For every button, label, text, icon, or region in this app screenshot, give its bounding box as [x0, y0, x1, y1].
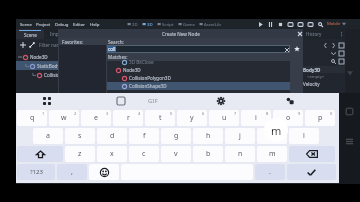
button[interactable]: movie — [295, 19, 305, 29]
button[interactable]: Renderer menu — [341, 21, 347, 27]
button[interactable]: sticker — [283, 94, 297, 108]
button[interactable]: 2D — [125, 19, 140, 29]
button[interactable]: p — [305, 110, 335, 126]
button[interactable]: , — [57, 164, 87, 180]
staticText: j — [239, 131, 241, 141]
button[interactable]: Add node — [18, 40, 27, 49]
staticText: Project — [36, 21, 51, 27]
button[interactable]: s — [65, 128, 95, 144]
button[interactable]: h — [193, 128, 223, 144]
button[interactable]: i — [241, 110, 271, 126]
button[interactable]: CollisionSha — [16, 70, 108, 79]
button[interactable]: g — [161, 128, 191, 144]
button[interactable]: z — [65, 146, 95, 162]
button[interactable]: t — [145, 110, 175, 126]
button[interactable]: n — [225, 146, 255, 162]
button[interactable]: 3D BitClose — [107, 58, 290, 66]
button[interactable]: search — [315, 19, 325, 29]
button[interactable]: Help — [88, 19, 102, 29]
staticText: Node3D — [123, 67, 141, 73]
staticText: p — [318, 113, 323, 123]
button[interactable]: Instance child scene — [27, 40, 36, 49]
button[interactable]: stop — [275, 19, 285, 29]
button[interactable]: Hide keyboard — [344, 136, 355, 147]
button[interactable]: w — [49, 110, 79, 126]
button[interactable]: grid — [40, 94, 54, 108]
button[interactable]: c — [129, 146, 159, 162]
button[interactable]: Clear — [283, 46, 290, 53]
button[interactable]: 3D — [140, 19, 155, 29]
button[interactable]: Close — [296, 30, 303, 37]
button[interactable]: k — [257, 128, 287, 144]
staticText: coll — [108, 46, 116, 52]
button[interactable]: Debug — [53, 19, 71, 29]
button[interactable]: pause — [265, 19, 275, 29]
button[interactable]: o — [273, 110, 303, 126]
staticText: o — [286, 113, 291, 123]
button[interactable]: Game — [176, 19, 197, 29]
button[interactable]: l — [289, 128, 319, 144]
staticText: w — [61, 113, 67, 123]
button[interactable]: d — [97, 128, 127, 144]
staticText: l — [303, 131, 305, 141]
button[interactable] — [17, 146, 63, 162]
button[interactable]: obj — [337, 41, 345, 49]
button[interactable]: Favorite — [292, 44, 302, 54]
button[interactable]: q — [329, 57, 337, 65]
button[interactable]: reload — [285, 19, 295, 29]
button[interactable]: r — [113, 110, 143, 126]
button[interactable]: Mobile — [325, 21, 341, 27]
button[interactable]: CollisionShape3D — [107, 82, 290, 90]
button[interactable]: Script — [155, 19, 176, 29]
button[interactable]: Project — [34, 19, 53, 29]
button[interactable]: movie — [305, 19, 315, 29]
button[interactable]: v — [329, 49, 337, 57]
button[interactable]: ?123 — [17, 164, 55, 180]
button[interactable]: obj — [337, 57, 345, 65]
button[interactable]: y — [177, 110, 207, 126]
staticText: Favorites: — [62, 39, 83, 45]
button[interactable]: obj — [337, 49, 345, 57]
staticText: Velocity — [303, 81, 320, 87]
button[interactable]: > — [329, 41, 337, 49]
button[interactable]: f — [129, 128, 159, 144]
button[interactable]: StaticBody3D — [16, 61, 108, 70]
button[interactable]: AssetLib — [197, 19, 223, 29]
button[interactable]: m — [257, 146, 287, 162]
button[interactable]: GIF — [148, 97, 158, 105]
button[interactable]: play — [255, 19, 265, 29]
button[interactable]: e — [81, 110, 111, 126]
staticText: Node3D — [30, 54, 48, 60]
button[interactable]: clip — [114, 94, 128, 108]
button[interactable]: Scene — [18, 19, 34, 29]
button[interactable]: Scene — [16, 29, 44, 39]
button[interactable]: Import — [44, 29, 72, 39]
staticText: Create New Node — [162, 31, 200, 37]
button[interactable]: j — [225, 128, 255, 144]
button[interactable]: < — [321, 41, 329, 49]
staticText: Body3D — [303, 67, 321, 73]
button[interactable]: u — [209, 110, 239, 126]
button[interactable]: Editor — [71, 19, 88, 29]
button[interactable] — [289, 146, 335, 162]
button[interactable]: v — [161, 146, 191, 162]
button[interactable]: . — [255, 164, 285, 180]
button[interactable] — [287, 164, 336, 180]
button[interactable]: Filter nam — [37, 41, 108, 49]
button[interactable]: Recents — [344, 106, 355, 117]
button[interactable]: x — [97, 146, 127, 162]
button[interactable]: Node3D — [16, 52, 108, 61]
button[interactable]: gear — [214, 94, 228, 108]
staticText: 8 — [266, 111, 269, 116]
button[interactable]: CollisionPolygon3D — [107, 74, 290, 82]
button[interactable] — [89, 164, 119, 180]
button[interactable]: b — [193, 146, 223, 162]
button[interactable]: a — [33, 128, 63, 144]
button[interactable]: q — [17, 110, 47, 126]
button[interactable]: Node3D — [107, 66, 290, 74]
button[interactable]: <empty> — [305, 74, 342, 80]
button[interactable]: coll — [107, 45, 290, 53]
staticText: k — [270, 131, 274, 141]
